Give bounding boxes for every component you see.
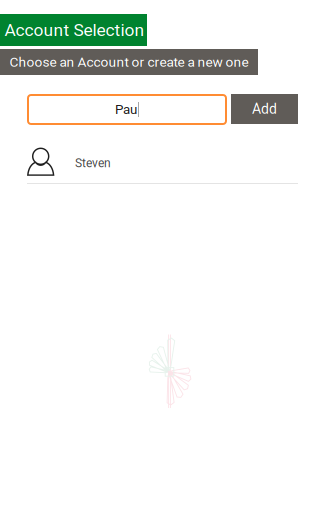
button[interactable]: Steven — [27, 141, 297, 183]
staticText: Steven — [75, 156, 111, 170]
staticText: Pau — [115, 102, 137, 117]
staticText: Choose an Account or create a new one — [9, 54, 248, 70]
staticText: Add — [252, 101, 277, 117]
button[interactable]: Add — [231, 94, 298, 124]
staticText: Account Selection — [4, 20, 144, 40]
